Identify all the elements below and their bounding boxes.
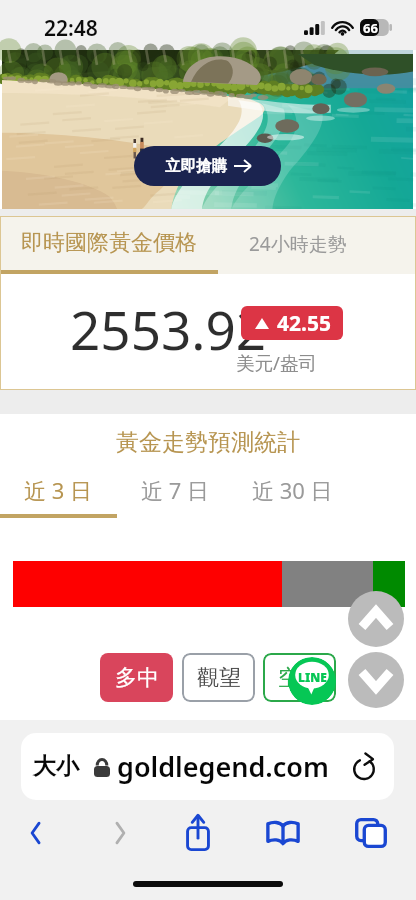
button[interactable]: 近 3 日 — [0, 475, 117, 505]
button[interactable]: 空中 — [263, 653, 336, 702]
button[interactable]: Scroll to top — [348, 591, 404, 647]
staticText: 立即搶購 — [165, 156, 227, 176]
button[interactable]: 即時國際黃金價格 — [0, 216, 218, 274]
button[interactable]: LINE — [288, 657, 336, 705]
button[interactable]: 觀望 — [182, 653, 255, 702]
staticText: 空中 — [278, 664, 322, 692]
staticText: 多中 — [115, 664, 159, 692]
button[interactable]: 立即搶購 — [2, 50, 413, 209]
button[interactable]: Scroll to bottom — [348, 652, 404, 708]
staticText: 觀望 — [197, 664, 241, 692]
staticText: 黃金走勢預測統計 — [0, 428, 416, 457]
staticText: 近 30 日 — [252, 475, 333, 505]
staticText: 42.55 — [277, 309, 331, 338]
button[interactable]: 42.55 — [241, 306, 343, 340]
button[interactable]: Forward — [90, 805, 150, 861]
staticText: 24小時走勢 — [249, 231, 347, 257]
button[interactable]: Reload page — [350, 753, 378, 781]
staticText: 近 3 日 — [24, 475, 93, 505]
button[interactable]: 近 30 日 — [234, 475, 351, 505]
button[interactable]: 近 7 日 — [117, 475, 234, 505]
staticText: LINE — [298, 669, 327, 685]
button[interactable]: Bookmarks — [253, 805, 313, 861]
staticText: 22:48 — [44, 14, 98, 43]
staticText: 66 — [363, 19, 378, 36]
button[interactable]: 大小 — [21, 733, 394, 800]
staticText: 美元/盎司 — [236, 350, 317, 375]
button[interactable]: Share — [168, 804, 228, 860]
button[interactable]: 24小時走勢 — [218, 216, 416, 274]
staticText: 2553.92 — [70, 293, 267, 365]
button[interactable]: 立即搶購 — [134, 146, 281, 186]
button[interactable]: 大小 — [33, 752, 79, 781]
staticText: 近 7 日 — [141, 475, 210, 505]
staticText: goldlegend.com — [117, 748, 329, 785]
button[interactable]: Tabs — [341, 805, 401, 861]
button[interactable]: Back — [6, 805, 66, 861]
staticText: 即時國際黃金價格 — [21, 229, 197, 257]
button[interactable]: 多中 — [100, 653, 173, 702]
